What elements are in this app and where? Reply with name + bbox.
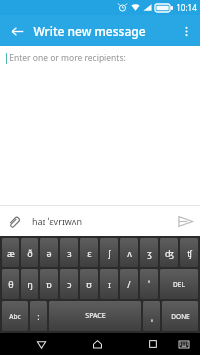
staticText: ʒ bbox=[147, 247, 152, 259]
staticText: ˌ bbox=[151, 310, 153, 322]
staticText: DEL bbox=[173, 280, 185, 289]
button[interactable]: ŋ bbox=[21, 269, 38, 299]
staticText: : bbox=[37, 310, 40, 322]
button[interactable]: θ bbox=[2, 269, 19, 299]
staticText: ʤ bbox=[165, 247, 174, 259]
staticText: Abc bbox=[9, 312, 21, 321]
button[interactable]: ʤ bbox=[160, 238, 178, 267]
button[interactable]: : bbox=[30, 301, 47, 331]
staticText: ʃ bbox=[108, 247, 111, 259]
staticText: ɛ bbox=[87, 247, 92, 259]
button[interactable]: More options bbox=[175, 20, 197, 42]
button[interactable]: DONE bbox=[162, 301, 198, 331]
staticText: / bbox=[127, 278, 131, 290]
button[interactable]: ə bbox=[40, 238, 58, 267]
button[interactable]: Recent apps bbox=[142, 333, 164, 355]
staticText: θ bbox=[8, 278, 14, 290]
button[interactable]: ʧ bbox=[180, 238, 198, 267]
staticText: ʊ bbox=[86, 278, 92, 290]
button[interactable]: ɔ bbox=[60, 269, 78, 299]
button[interactable]: ʃ bbox=[100, 238, 118, 267]
staticText: ɔ bbox=[67, 278, 72, 290]
staticText: ˈ bbox=[148, 278, 150, 290]
button[interactable]: ʊ bbox=[80, 269, 98, 299]
button[interactable]: DEL bbox=[160, 269, 198, 299]
button[interactable]: ˌ bbox=[143, 301, 160, 331]
button[interactable]: Send bbox=[170, 206, 200, 236]
staticText: 10:14 bbox=[176, 2, 197, 13]
button[interactable]: Home bbox=[86, 333, 108, 355]
button[interactable]: ˈ bbox=[140, 269, 158, 299]
staticText: DONE bbox=[171, 312, 190, 321]
button[interactable]: haɪ ˈɛvrɪwʌn bbox=[26, 206, 170, 236]
button[interactable]: Back bbox=[6, 20, 28, 42]
button[interactable]: Attach file bbox=[0, 208, 26, 234]
staticText: ɜ bbox=[67, 247, 72, 259]
staticText: Enter one or more recipients: bbox=[9, 52, 126, 64]
button[interactable]: Enter one or more recipients: bbox=[0, 46, 200, 70]
staticText: ə bbox=[46, 247, 52, 259]
staticText: ʧ bbox=[187, 247, 192, 259]
staticText: æ bbox=[7, 247, 15, 259]
button[interactable]: ɪ bbox=[100, 269, 118, 299]
button[interactable]: ɛ bbox=[80, 238, 98, 267]
button[interactable]: ɜ bbox=[60, 238, 78, 267]
staticText: ʌ bbox=[127, 247, 132, 259]
staticText: ð bbox=[27, 247, 33, 259]
button[interactable]: æ bbox=[2, 238, 19, 267]
button[interactable]: / bbox=[120, 269, 138, 299]
button[interactable]: ɒ bbox=[40, 269, 58, 299]
button[interactable]: Switch keyboard bbox=[173, 333, 195, 355]
staticText: ŋ bbox=[27, 278, 33, 290]
button[interactable]: Abc bbox=[2, 301, 28, 331]
button[interactable]: Back bbox=[30, 333, 52, 355]
staticText: SPACE bbox=[85, 311, 106, 321]
button[interactable]: ʒ bbox=[140, 238, 158, 267]
button[interactable]: SPACE bbox=[49, 301, 141, 331]
button[interactable]: ʌ bbox=[120, 238, 138, 267]
staticText: ɪ bbox=[108, 278, 111, 290]
staticText: haɪ ˈɛvrɪwʌn bbox=[32, 215, 82, 227]
staticText: Write new message bbox=[33, 23, 146, 39]
button[interactable]: ð bbox=[21, 238, 38, 267]
staticText: ɒ bbox=[46, 278, 52, 290]
